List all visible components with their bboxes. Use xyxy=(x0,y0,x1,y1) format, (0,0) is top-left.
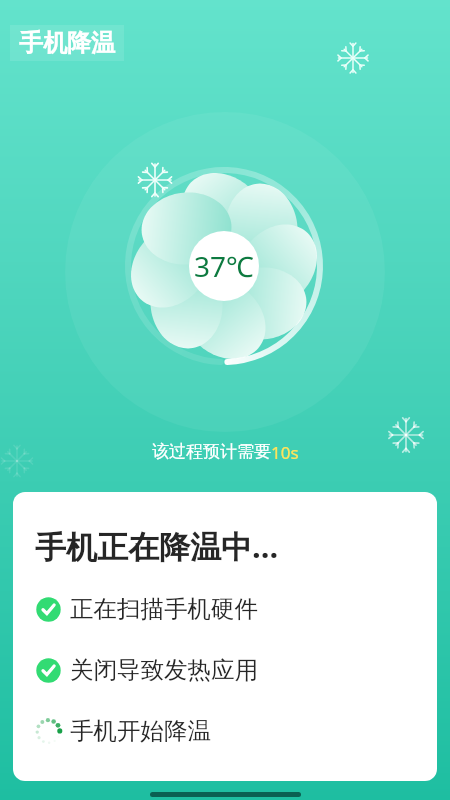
staticText: 正在扫描手机硬件 xyxy=(70,594,258,624)
button[interactable]: 手机降温 xyxy=(10,25,124,61)
staticText: 关闭导致发热应用 xyxy=(70,655,258,685)
button[interactable]: 正在扫描手机硬件 xyxy=(13,594,437,624)
staticText: 10s xyxy=(271,441,299,464)
staticText: 该过程预计需要 xyxy=(152,441,271,462)
staticText: 手机开始降温 xyxy=(70,716,211,746)
staticText: 37℃ xyxy=(194,247,254,285)
button[interactable]: 手机开始降温 xyxy=(13,716,437,746)
staticText: 手机降温 xyxy=(19,28,115,58)
staticText: 手机正在降温中... xyxy=(35,525,279,567)
button[interactable]: 关闭导致发热应用 xyxy=(13,655,437,685)
